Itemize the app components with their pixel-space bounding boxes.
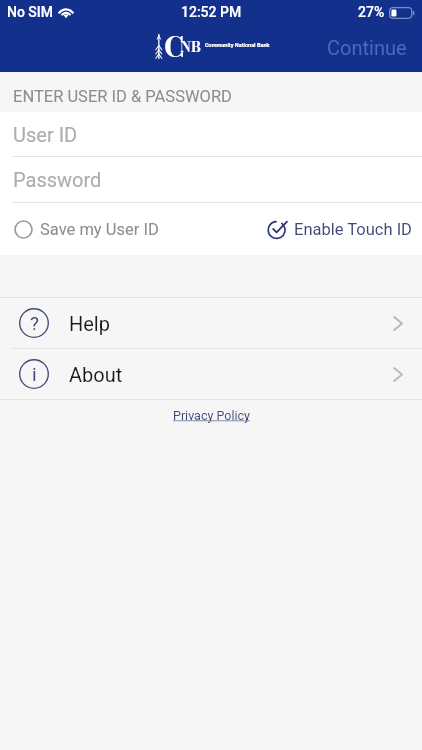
button[interactable]: i [0, 349, 422, 399]
staticText: Continue [327, 36, 407, 59]
staticText: 27% [358, 4, 385, 20]
staticText: No SIM [7, 4, 54, 20]
staticText: i [32, 363, 37, 385]
button[interactable]: Enable Touch ID [268, 220, 422, 239]
button[interactable]: Save my User ID [0, 220, 167, 239]
staticText: User ID [13, 123, 78, 146]
staticText: About [69, 363, 123, 386]
staticText: ENTER USER ID & PASSWORD [13, 87, 232, 106]
button[interactable]: Privacy Policy [165, 404, 258, 427]
staticText: Privacy Policy [173, 408, 250, 423]
button[interactable]: ? [0, 298, 422, 348]
staticText: Save my User ID [40, 220, 159, 239]
staticText: Enable Touch ID [294, 220, 412, 239]
button[interactable]: Continue [315, 28, 419, 67]
staticText: C [164, 25, 185, 65]
button[interactable]: User ID [0, 112, 422, 156]
staticText: NB [180, 36, 201, 57]
staticText: 12:52 PM [181, 4, 242, 20]
staticText: Help [69, 312, 110, 335]
staticText: ? [30, 312, 39, 334]
staticText: Password [13, 168, 102, 191]
staticText: Community National Bank [205, 42, 270, 48]
button[interactable]: Password [0, 157, 422, 202]
